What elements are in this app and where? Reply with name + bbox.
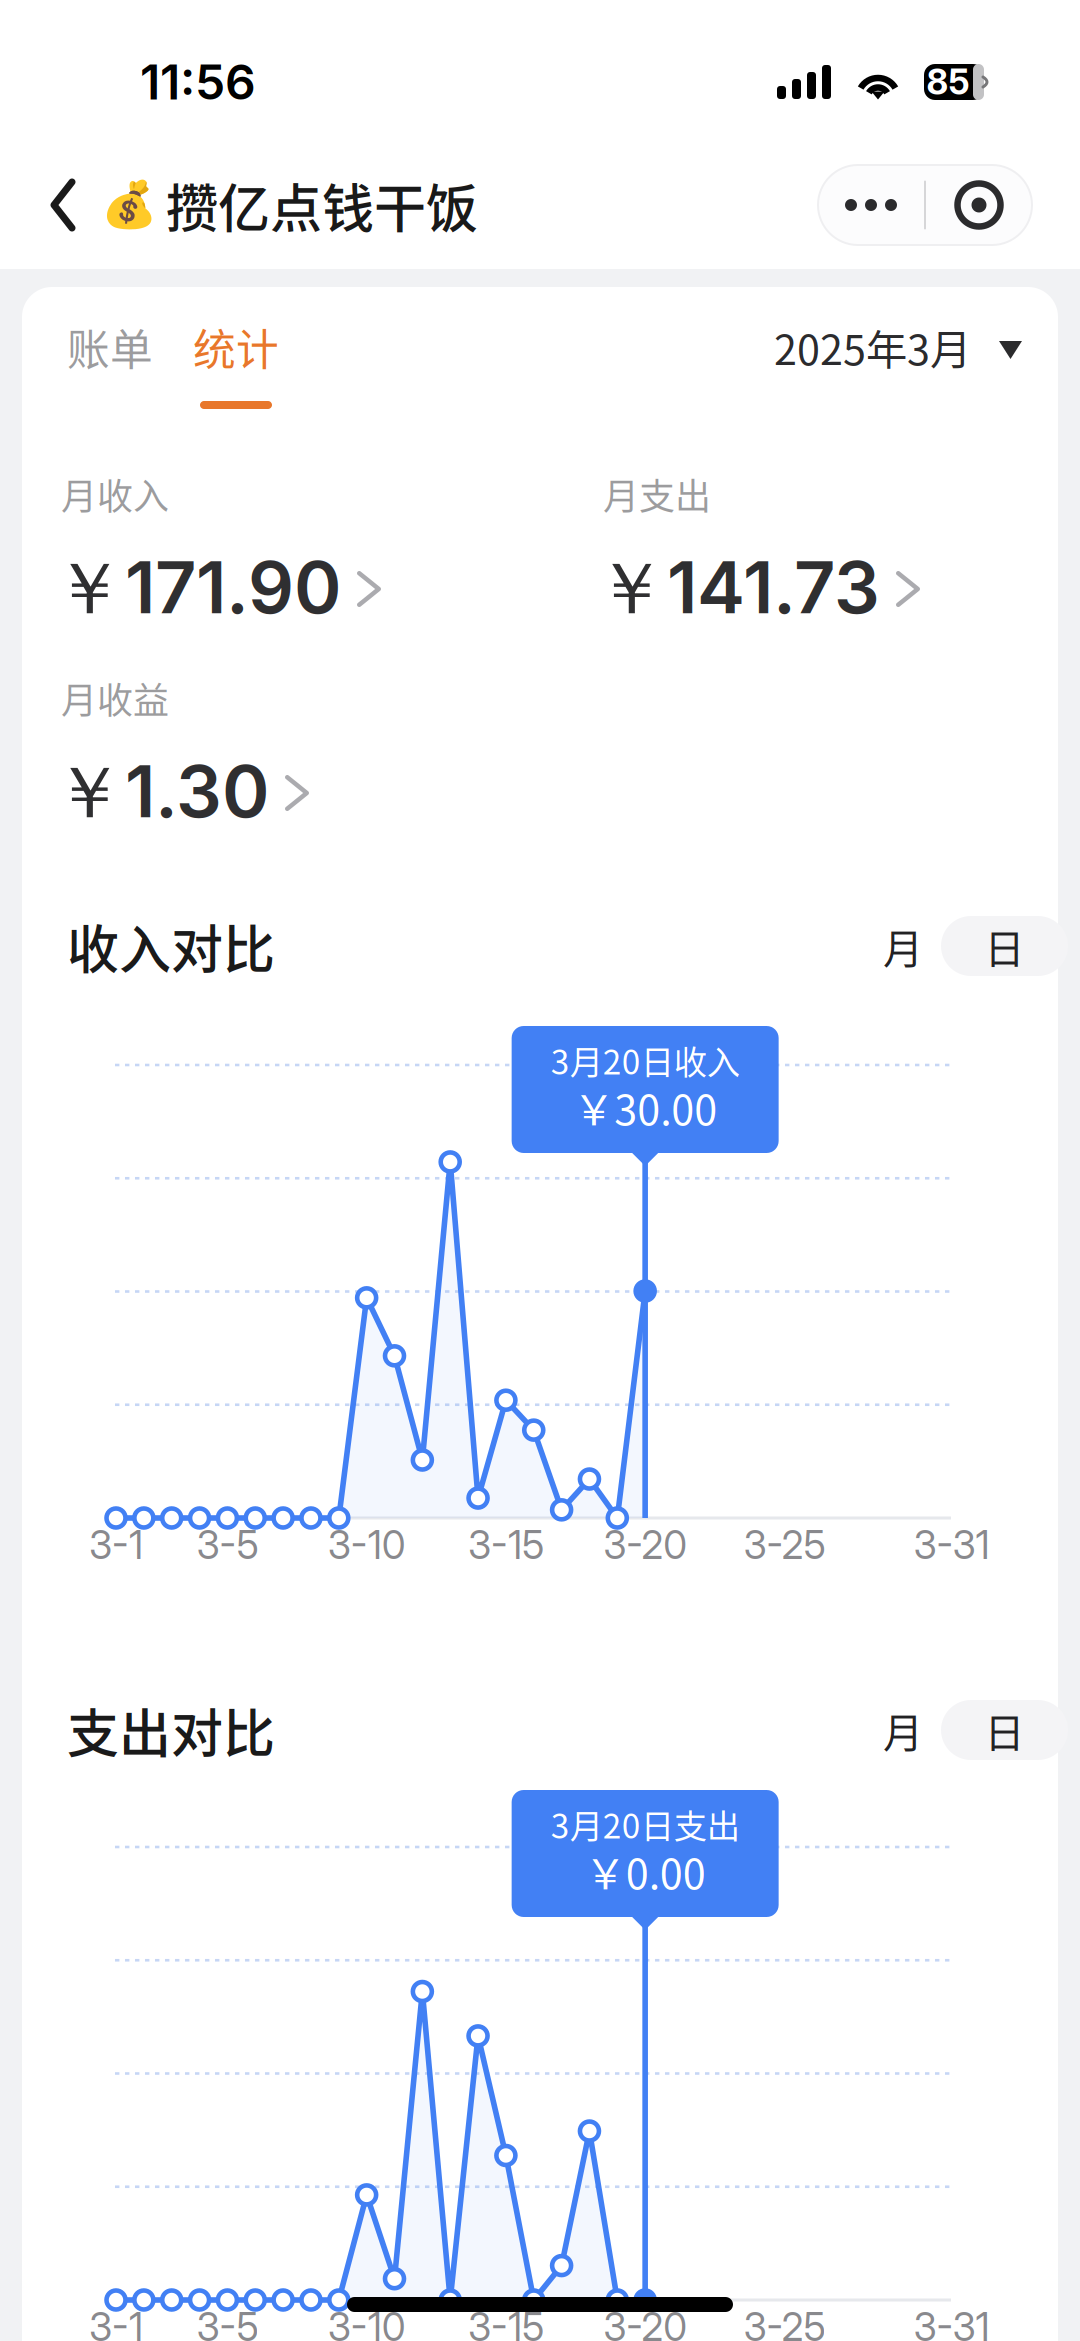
staticText: 统计 — [193, 316, 279, 378]
staticText: 3-15 — [468, 1522, 544, 1568]
staticText: ￥1.30 — [53, 747, 269, 838]
staticText: 💰 — [101, 178, 157, 231]
staticText: 月收入 — [61, 468, 169, 520]
staticText: 月支出 — [603, 468, 711, 520]
staticText: 3-10 — [328, 1522, 406, 1568]
staticText: 日 — [984, 1701, 1024, 1759]
staticText: 月 — [883, 917, 923, 975]
staticText: 3-5 — [196, 2304, 258, 2341]
staticText: 3-31 — [913, 1522, 989, 1568]
staticText: 3-25 — [743, 1522, 825, 1568]
button[interactable]: 日 — [941, 916, 1068, 976]
staticText: 2025年3月 — [774, 317, 971, 377]
staticText: 3月20日支出 — [551, 1800, 740, 1848]
staticText: 3-31 — [913, 2304, 989, 2341]
button[interactable]: 日 — [941, 1700, 1068, 1760]
button[interactable]: 更多 — [818, 165, 1032, 245]
staticText: 月收益 — [61, 672, 169, 724]
staticText: 攒亿点钱干饭 — [166, 167, 478, 243]
staticText: 3-10 — [328, 2304, 406, 2341]
staticText: 3-1 — [89, 2304, 143, 2341]
staticText: ￥0.00 — [585, 1841, 706, 1901]
button[interactable]: 月收入 — [53, 472, 381, 625]
button[interactable]: 返回 — [0, 156, 101, 254]
button[interactable]: 月 — [865, 916, 941, 976]
staticText: 85 — [926, 61, 969, 103]
staticText: 3-15 — [468, 2304, 544, 2341]
staticText: ￥30.00 — [573, 1077, 717, 1137]
staticText: 支出对比 — [67, 1692, 275, 1768]
button[interactable]: 统计 — [153, 319, 279, 409]
staticText: 3-1 — [89, 1522, 143, 1568]
staticText: 日 — [984, 917, 1024, 975]
staticText: ￥171.90 — [53, 543, 341, 634]
staticText: 3-20 — [603, 1522, 687, 1568]
button[interactable]: 账单 — [67, 319, 153, 409]
staticText: 3-25 — [743, 2304, 825, 2341]
staticText: ￥141.73 — [595, 543, 880, 634]
staticText: 3月20日收入 — [551, 1036, 740, 1084]
staticText: 收入对比 — [67, 908, 275, 984]
staticText: 11:56 — [140, 53, 256, 111]
staticText: 月 — [883, 1701, 923, 1759]
staticText: 3-5 — [196, 1522, 258, 1568]
staticText: 账单 — [67, 316, 153, 378]
button[interactable]: 月支出 — [595, 472, 920, 625]
button[interactable]: 2025年3月 — [774, 319, 1022, 375]
button[interactable]: 月收益 — [53, 676, 309, 829]
staticText: 3-20 — [603, 2304, 687, 2341]
button[interactable]: 月 — [865, 1700, 941, 1760]
